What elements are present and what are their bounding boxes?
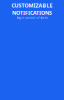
- staticText: NOTIFICATIONS: [12, 9, 52, 16]
- staticText: Stay in control of alerts: [16, 16, 47, 20]
- staticText: CUSTOMIZABLE: [11, 2, 52, 9]
